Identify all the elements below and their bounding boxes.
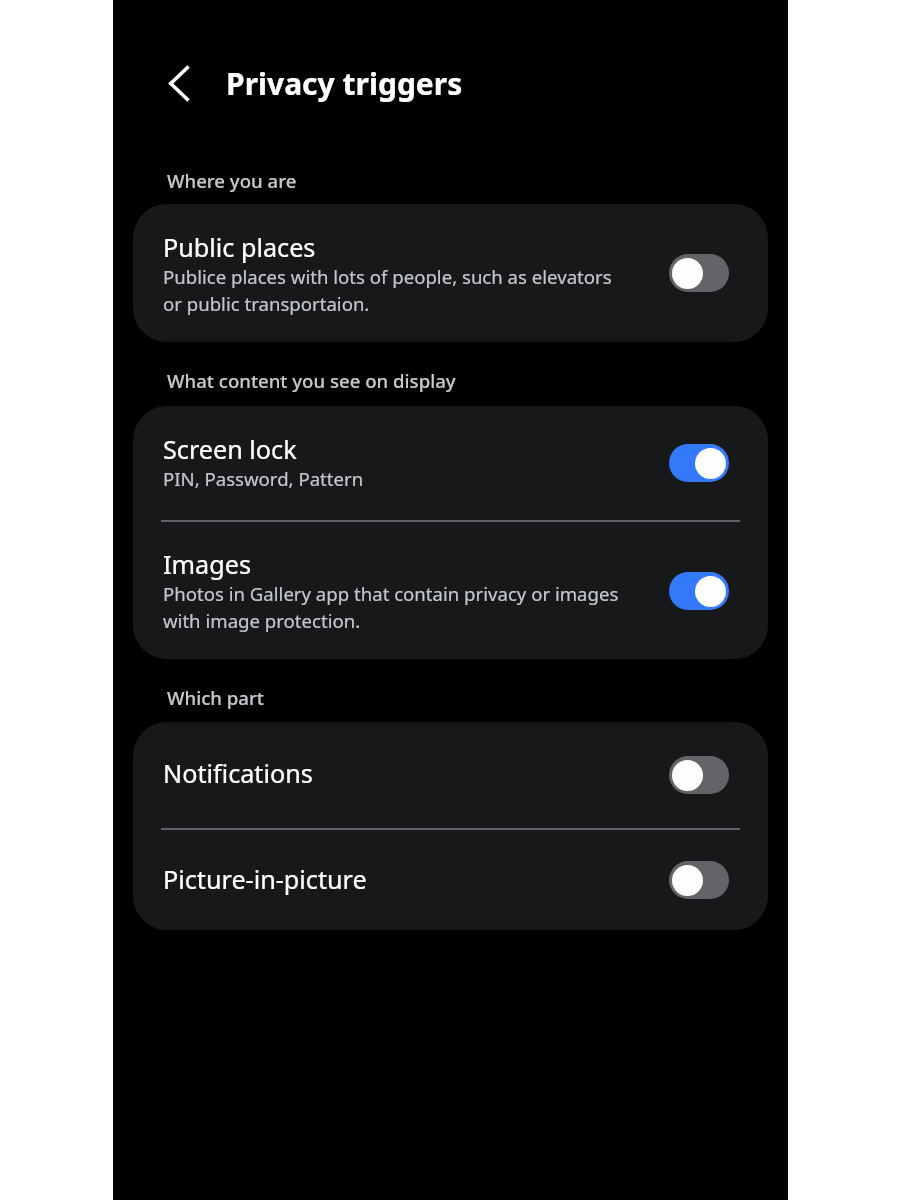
staticText: Images (163, 547, 251, 581)
button[interactable]: Images, on (669, 572, 729, 610)
staticText: Notifications (163, 756, 313, 790)
staticText: Where you are (167, 168, 297, 193)
button[interactable]: Screen lock (133, 406, 768, 520)
staticText: Privacy triggers (226, 63, 463, 104)
staticText: Which part (167, 685, 264, 710)
staticText: Publice places with lots of people, such… (163, 264, 631, 317)
button[interactable]: Notifications (133, 722, 768, 828)
staticText: What content you see on display (167, 368, 456, 393)
button[interactable]: Picture-in-picture (133, 830, 768, 930)
staticText: Public places (163, 230, 316, 264)
button[interactable]: Images (133, 522, 768, 659)
staticText: Picture-in-picture (163, 862, 367, 896)
button[interactable]: Public places, off (669, 254, 729, 292)
button[interactable]: Public places (133, 204, 768, 342)
button[interactable]: Back (153, 57, 205, 109)
staticText: Photos in Gallery app that contain priva… (163, 581, 631, 634)
staticText: PIN, Password, Pattern (163, 466, 364, 491)
staticText: Screen lock (163, 432, 297, 466)
button[interactable]: Picture-in-picture, off (669, 861, 729, 899)
button[interactable]: Notifications, off (669, 756, 729, 794)
button[interactable]: Screen lock, on (669, 444, 729, 482)
